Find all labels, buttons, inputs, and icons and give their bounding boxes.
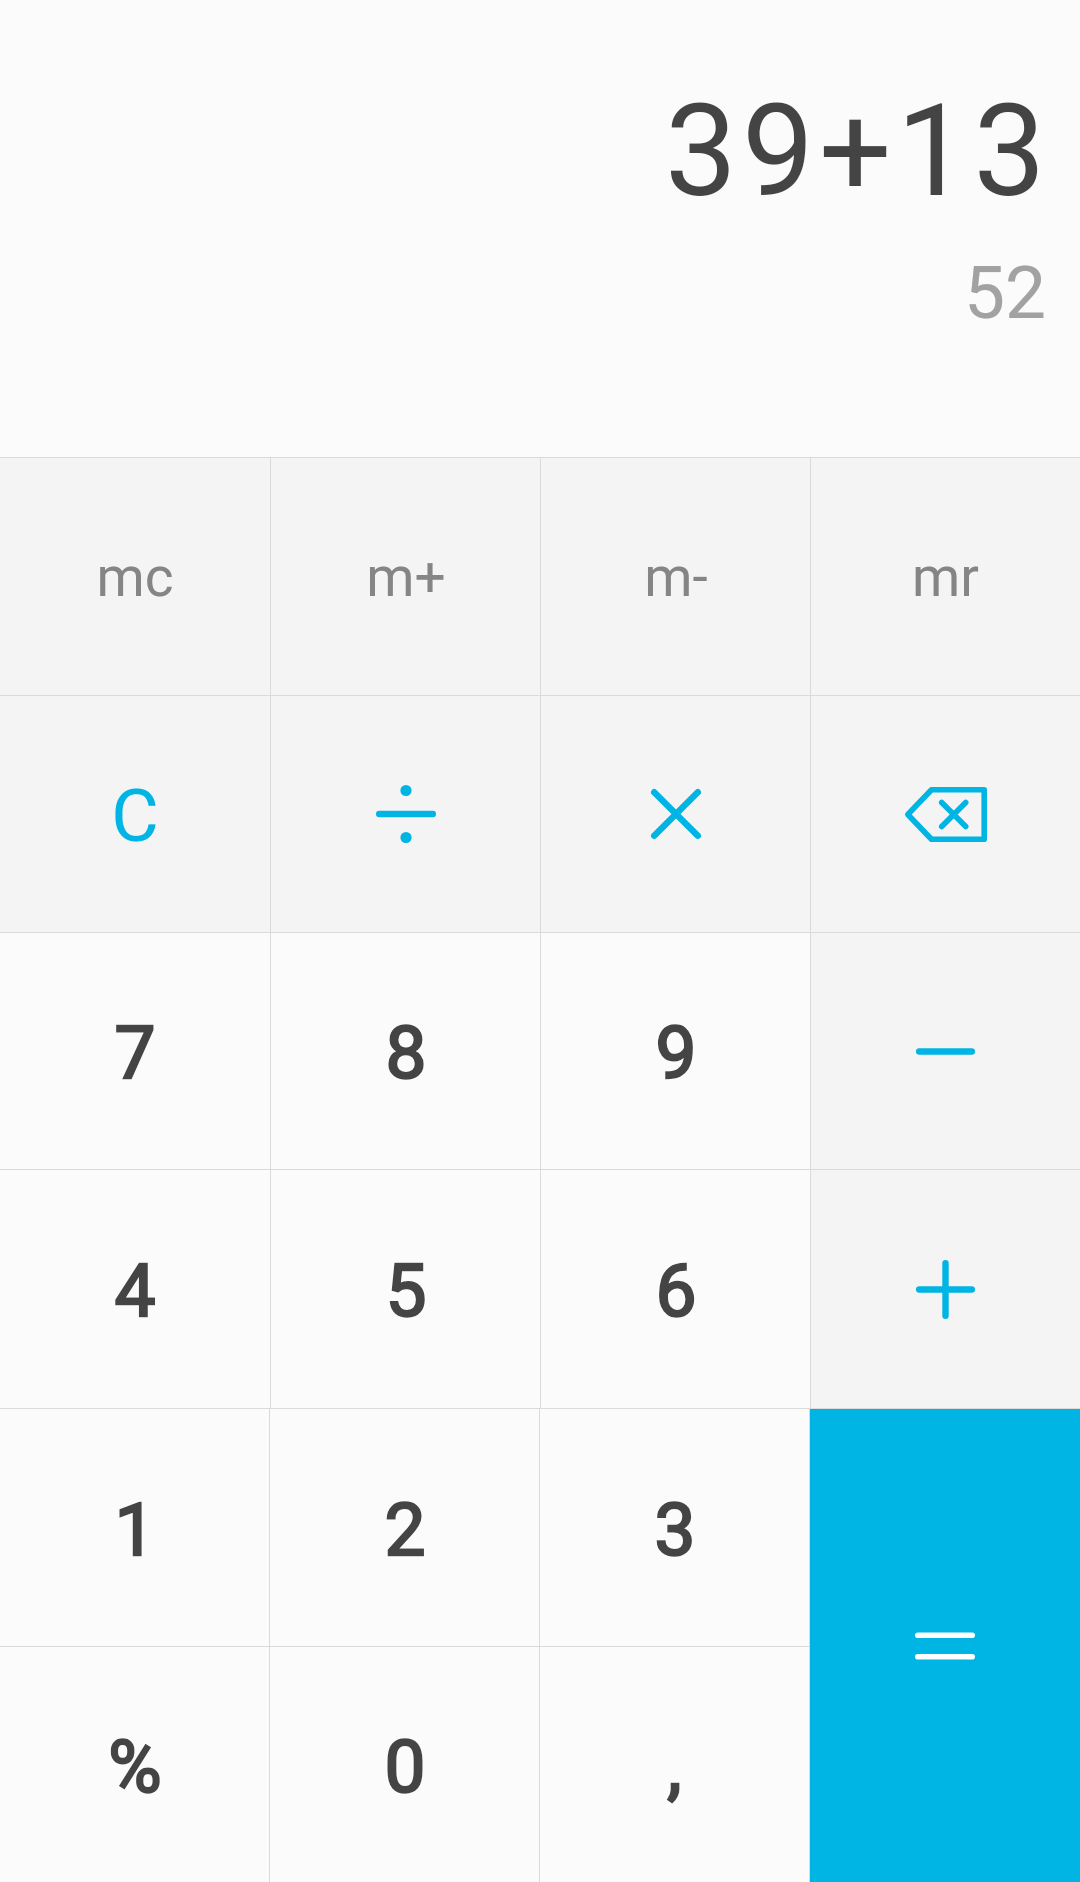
button[interactable]: Plus (811, 1170, 1080, 1408)
button[interactable]: mc (0, 458, 270, 695)
staticText: 0 (384, 1724, 426, 1810)
staticText: 52 (964, 250, 1047, 336)
button[interactable]: 3 (540, 1409, 809, 1646)
staticText: C (111, 773, 159, 859)
staticText: 7 (114, 1010, 156, 1096)
staticText: 2 (384, 1487, 426, 1573)
button[interactable]: mr (811, 458, 1080, 695)
button[interactable]: 9 (541, 933, 810, 1169)
button[interactable]: Backspace (811, 696, 1080, 932)
staticText: 1 (114, 1487, 156, 1573)
button[interactable]: 6 (541, 1170, 810, 1408)
staticText: mc (96, 545, 174, 609)
button[interactable]: 1 (0, 1409, 269, 1646)
staticText: m- (644, 545, 708, 609)
button[interactable]: Minus (811, 933, 1080, 1169)
staticText: 5 (385, 1248, 427, 1334)
staticText: 4 (114, 1248, 156, 1334)
button[interactable]: , (540, 1647, 809, 1882)
button[interactable]: m- (541, 458, 810, 695)
staticText: , (667, 1724, 682, 1810)
button[interactable]: 5 (271, 1170, 540, 1408)
staticText: 8 (385, 1010, 427, 1096)
staticText: mr (912, 545, 979, 609)
button[interactable]: 4 (0, 1170, 270, 1408)
staticText: m+ (366, 545, 446, 609)
staticText: 3 (654, 1487, 696, 1573)
staticText: 39+13 (665, 76, 1051, 226)
button[interactable]: m+ (271, 458, 540, 695)
button[interactable]: C (0, 696, 270, 932)
button[interactable]: Divide (271, 696, 540, 932)
staticText: 9 (655, 1010, 697, 1096)
staticText: % (108, 1724, 162, 1810)
button[interactable]: % (0, 1647, 269, 1882)
button[interactable]: Equals (810, 1409, 1080, 1882)
button[interactable]: 2 (270, 1409, 539, 1646)
staticText: 6 (655, 1248, 697, 1334)
button[interactable]: 0 (270, 1647, 539, 1882)
button[interactable]: 7 (0, 933, 270, 1169)
button[interactable]: Multiply (541, 696, 810, 932)
button[interactable]: 8 (271, 933, 540, 1169)
